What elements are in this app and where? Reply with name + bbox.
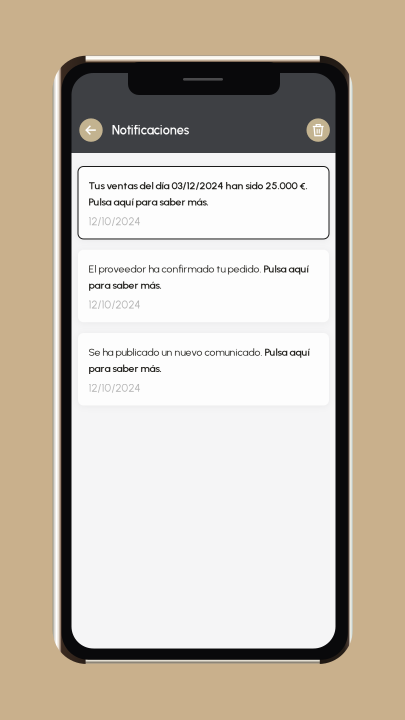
staticText: 12/10/2024 (88, 381, 140, 394)
button[interactable]: Delete all notifications (306, 118, 330, 142)
staticText: El proveedor ha confirmado tu pedido. Pu… (88, 263, 308, 291)
button[interactable]: Tus ventas del día 03/12/2024 han sido 2… (78, 166, 329, 239)
button[interactable]: El proveedor ha confirmado tu pedido. Pu… (78, 250, 329, 322)
button[interactable]: Se ha publicado un nuevo comunicado. Pul… (78, 333, 329, 405)
staticText: Notificaciones (112, 122, 189, 138)
staticText: 12/10/2024 (88, 215, 140, 228)
staticText: Tus ventas del día 03/12/2024 han sido 2… (88, 179, 307, 208)
staticText: 12/10/2024 (88, 298, 140, 311)
button[interactable]: Back (79, 118, 103, 142)
staticText: Se ha publicado un nuevo comunicado. Pul… (88, 346, 309, 374)
